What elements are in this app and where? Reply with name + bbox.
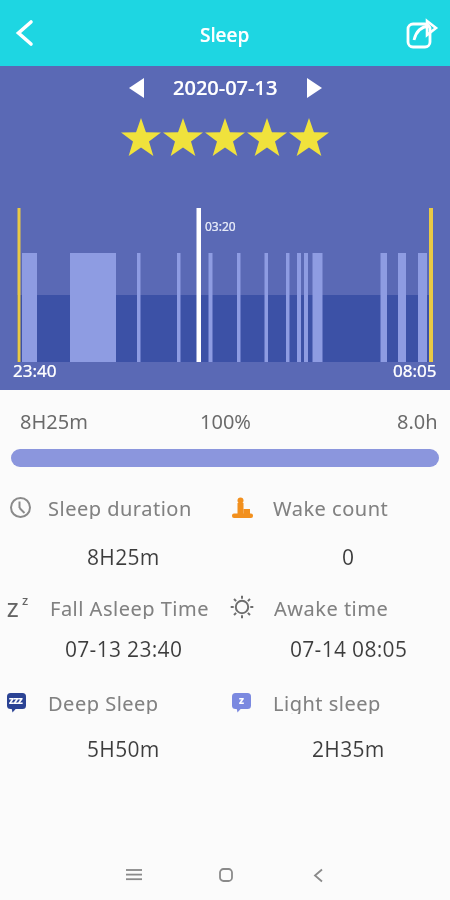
staticText: Deep Sleep (48, 690, 159, 714)
staticText: Sleep duration (48, 495, 192, 519)
staticText: 8H25m (87, 543, 160, 572)
staticText: Light sleep (273, 690, 381, 714)
staticText: Sleep (200, 22, 250, 48)
button[interactable] (305, 862, 331, 888)
button[interactable]: z (225, 690, 450, 764)
staticText: 08:05 (393, 359, 437, 382)
button[interactable] (129, 76, 163, 100)
staticText: zzz (9, 693, 23, 707)
staticText: Z (7, 596, 19, 619)
button[interactable] (213, 862, 239, 888)
staticText: 100% (200, 408, 251, 435)
staticText: 03:20 (205, 218, 236, 234)
staticText: Wake count (273, 495, 389, 519)
button[interactable]: Wake count (225, 495, 450, 572)
staticText: Fall Asleep Time (50, 595, 209, 619)
staticText: z (22, 591, 29, 609)
staticText: 2020-07-13 (173, 74, 278, 101)
staticText: Awake time (274, 595, 389, 619)
staticText: 0 (342, 543, 355, 572)
button[interactable] (288, 76, 322, 100)
staticText: 8.0h (397, 408, 438, 435)
button[interactable]: Awake time (225, 595, 450, 664)
staticText: 2H35m (312, 735, 385, 764)
button[interactable] (121, 862, 147, 888)
button[interactable] (4, 13, 44, 53)
button[interactable]: zzz (0, 690, 225, 764)
staticText: 5H50m (87, 735, 160, 764)
staticText: 07-13 23:40 (65, 635, 183, 664)
button[interactable]: Sleep duration (0, 495, 225, 572)
staticText: 07-14 08:05 (290, 635, 408, 664)
staticText: 8H25m (20, 408, 88, 435)
staticText: 23:40 (13, 359, 57, 382)
button[interactable]: Z (0, 595, 225, 664)
staticText: z (239, 693, 244, 707)
button[interactable] (400, 11, 444, 55)
